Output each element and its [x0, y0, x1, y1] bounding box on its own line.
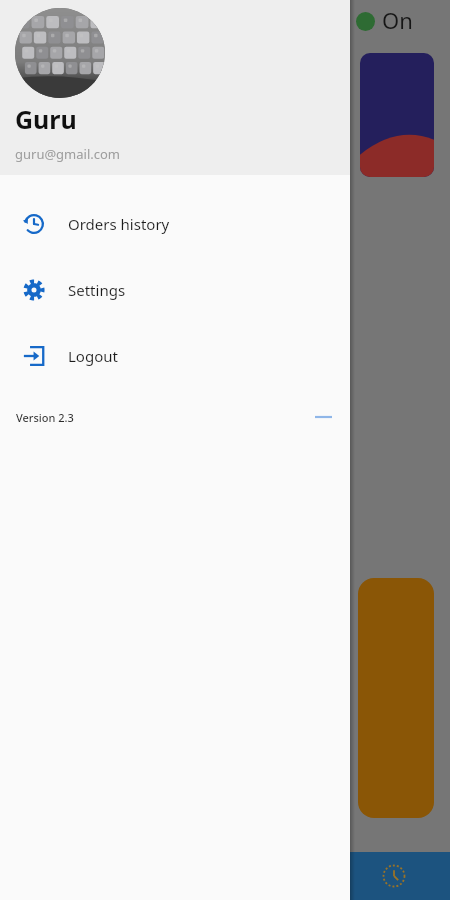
staticText: Settings: [68, 280, 126, 300]
button[interactable]: Profile photo: [0, 0, 350, 175]
staticText: Version 2.3: [16, 410, 74, 425]
button[interactable]: [358, 578, 434, 818]
other: Settings: [23, 279, 45, 301]
staticText: guru@gmail.com: [15, 145, 121, 163]
staticText: Orders history: [68, 214, 170, 234]
other: Logout: [23, 345, 45, 367]
button[interactable]: Orders history: [0, 191, 350, 257]
button[interactable]: Profile photo: [15, 8, 105, 98]
button[interactable]: Logout: [0, 323, 350, 389]
staticText: Guru: [15, 102, 77, 136]
staticText: On: [382, 5, 413, 35]
button[interactable]: Version 2.3: [16, 403, 332, 431]
staticText: Logout: [68, 346, 118, 366]
button[interactable]: [360, 53, 434, 177]
button[interactable]: Settings: [0, 257, 350, 323]
button[interactable]: History: [382, 864, 406, 888]
other: Orders history: [22, 212, 46, 236]
